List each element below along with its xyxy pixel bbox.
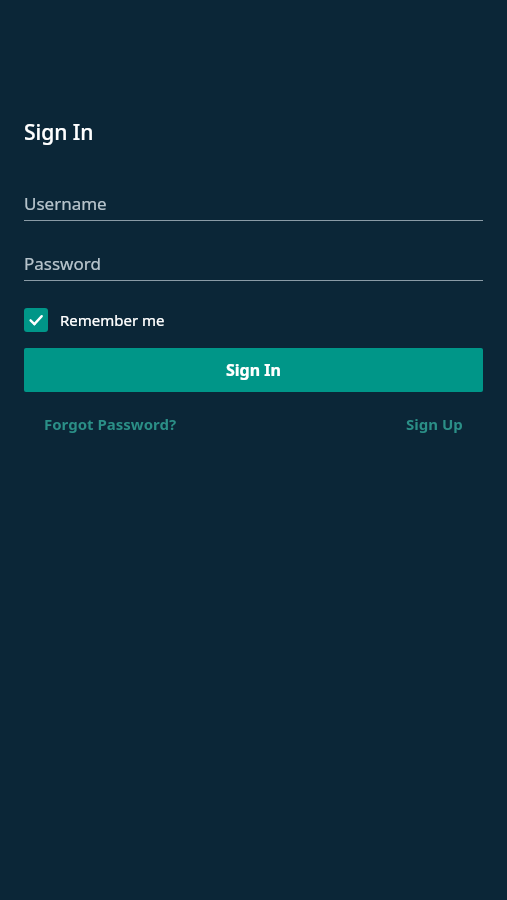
button[interactable]: Forgot Password? xyxy=(24,406,197,442)
staticText: Sign Up xyxy=(406,414,463,434)
staticText: Remember me xyxy=(60,310,165,330)
staticText: Username xyxy=(24,192,107,215)
button[interactable]: Sign Up xyxy=(386,406,483,442)
staticText: Forgot Password? xyxy=(44,414,177,434)
staticText: Sign In xyxy=(24,118,94,147)
button[interactable]: Username xyxy=(24,189,483,221)
button[interactable]: Password xyxy=(24,249,483,281)
staticText: Sign In xyxy=(226,359,281,381)
button[interactable]: Sign In xyxy=(24,348,483,392)
staticText: Password xyxy=(24,252,101,275)
button[interactable]: Remember me xyxy=(24,306,165,334)
